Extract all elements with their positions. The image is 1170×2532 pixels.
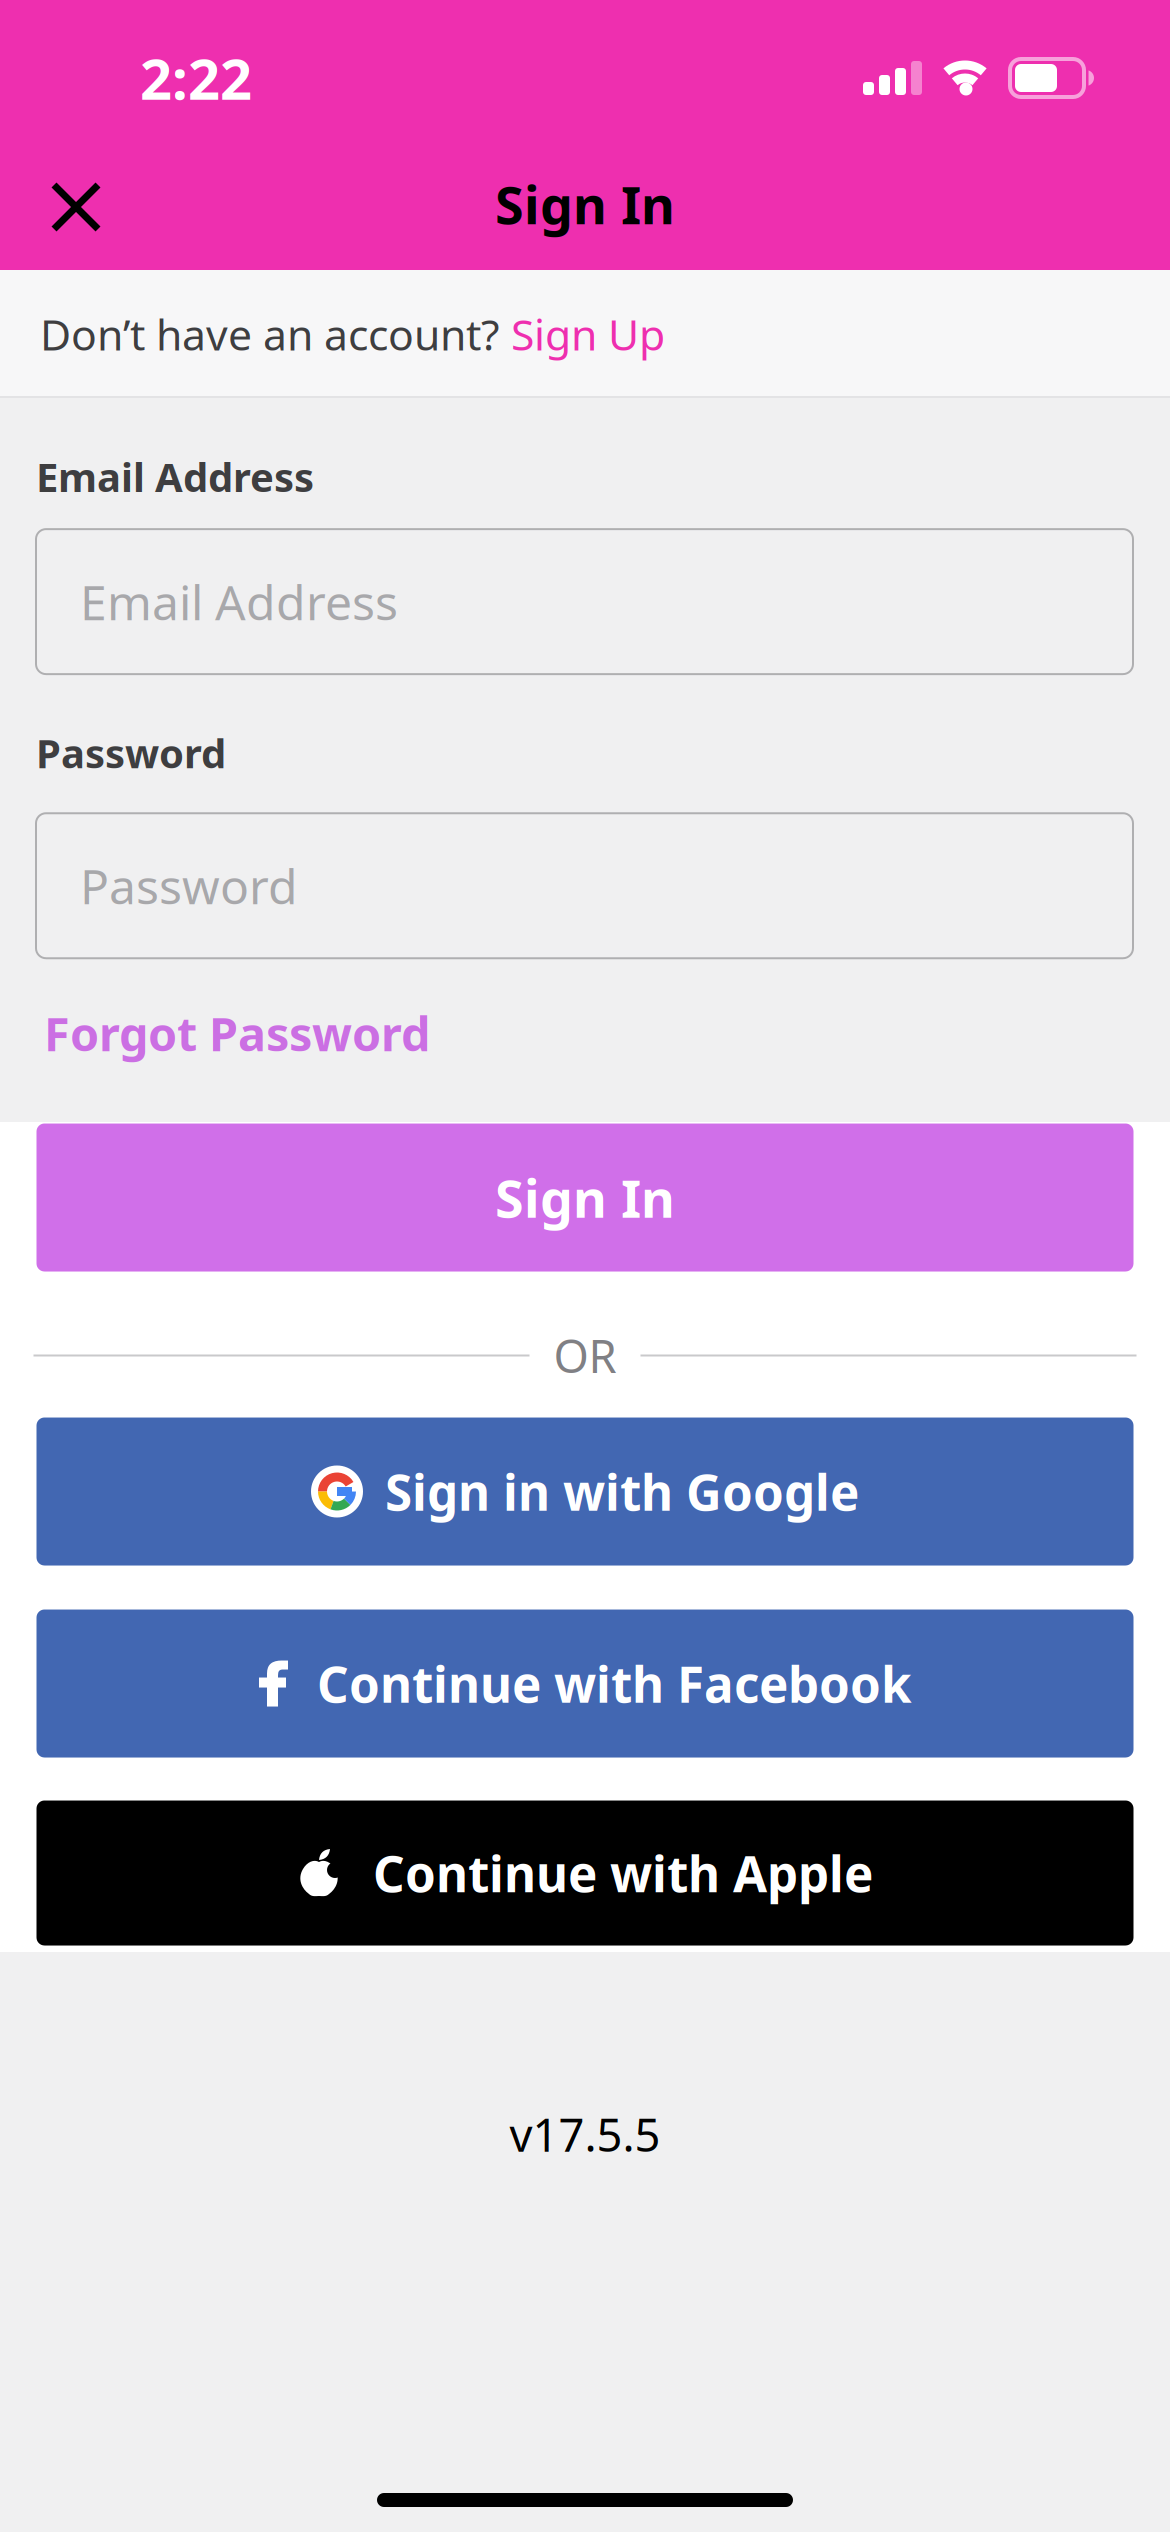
staticText: Sign In bbox=[495, 169, 675, 239]
staticText: Email Address bbox=[36, 450, 314, 503]
staticText: Continue with Facebook bbox=[317, 1651, 912, 1716]
staticText: Password bbox=[36, 726, 226, 779]
staticText: Sign In bbox=[495, 1163, 675, 1232]
staticText: Email Address bbox=[80, 570, 398, 633]
staticText: Don’t have an account? bbox=[40, 306, 511, 362]
button[interactable]: Password bbox=[36, 813, 1133, 958]
staticText: Sign Up bbox=[511, 306, 665, 362]
button[interactable]: Continue with Facebook bbox=[36, 1609, 1133, 1757]
button[interactable]: Email Address bbox=[36, 529, 1133, 674]
staticText: 2:22 bbox=[140, 41, 252, 115]
staticText: Forgot Password bbox=[44, 1002, 430, 1064]
button[interactable]: Continue with Apple bbox=[36, 1800, 1133, 1945]
staticText: Sign in with Google bbox=[385, 1459, 859, 1524]
button[interactable]: Forgot Password bbox=[0, 958, 430, 1064]
button[interactable]: Sign in with Google bbox=[36, 1417, 1133, 1565]
staticText: Continue with Apple bbox=[373, 1840, 873, 1906]
button[interactable]: Sign In bbox=[36, 1123, 1133, 1271]
staticText: OR bbox=[553, 1325, 616, 1386]
staticText: Password bbox=[80, 854, 298, 918]
button[interactable]: Close bbox=[0, 149, 130, 251]
button[interactable]: Sign Up bbox=[511, 306, 665, 362]
staticText: v17.5.5 bbox=[509, 2104, 660, 2164]
